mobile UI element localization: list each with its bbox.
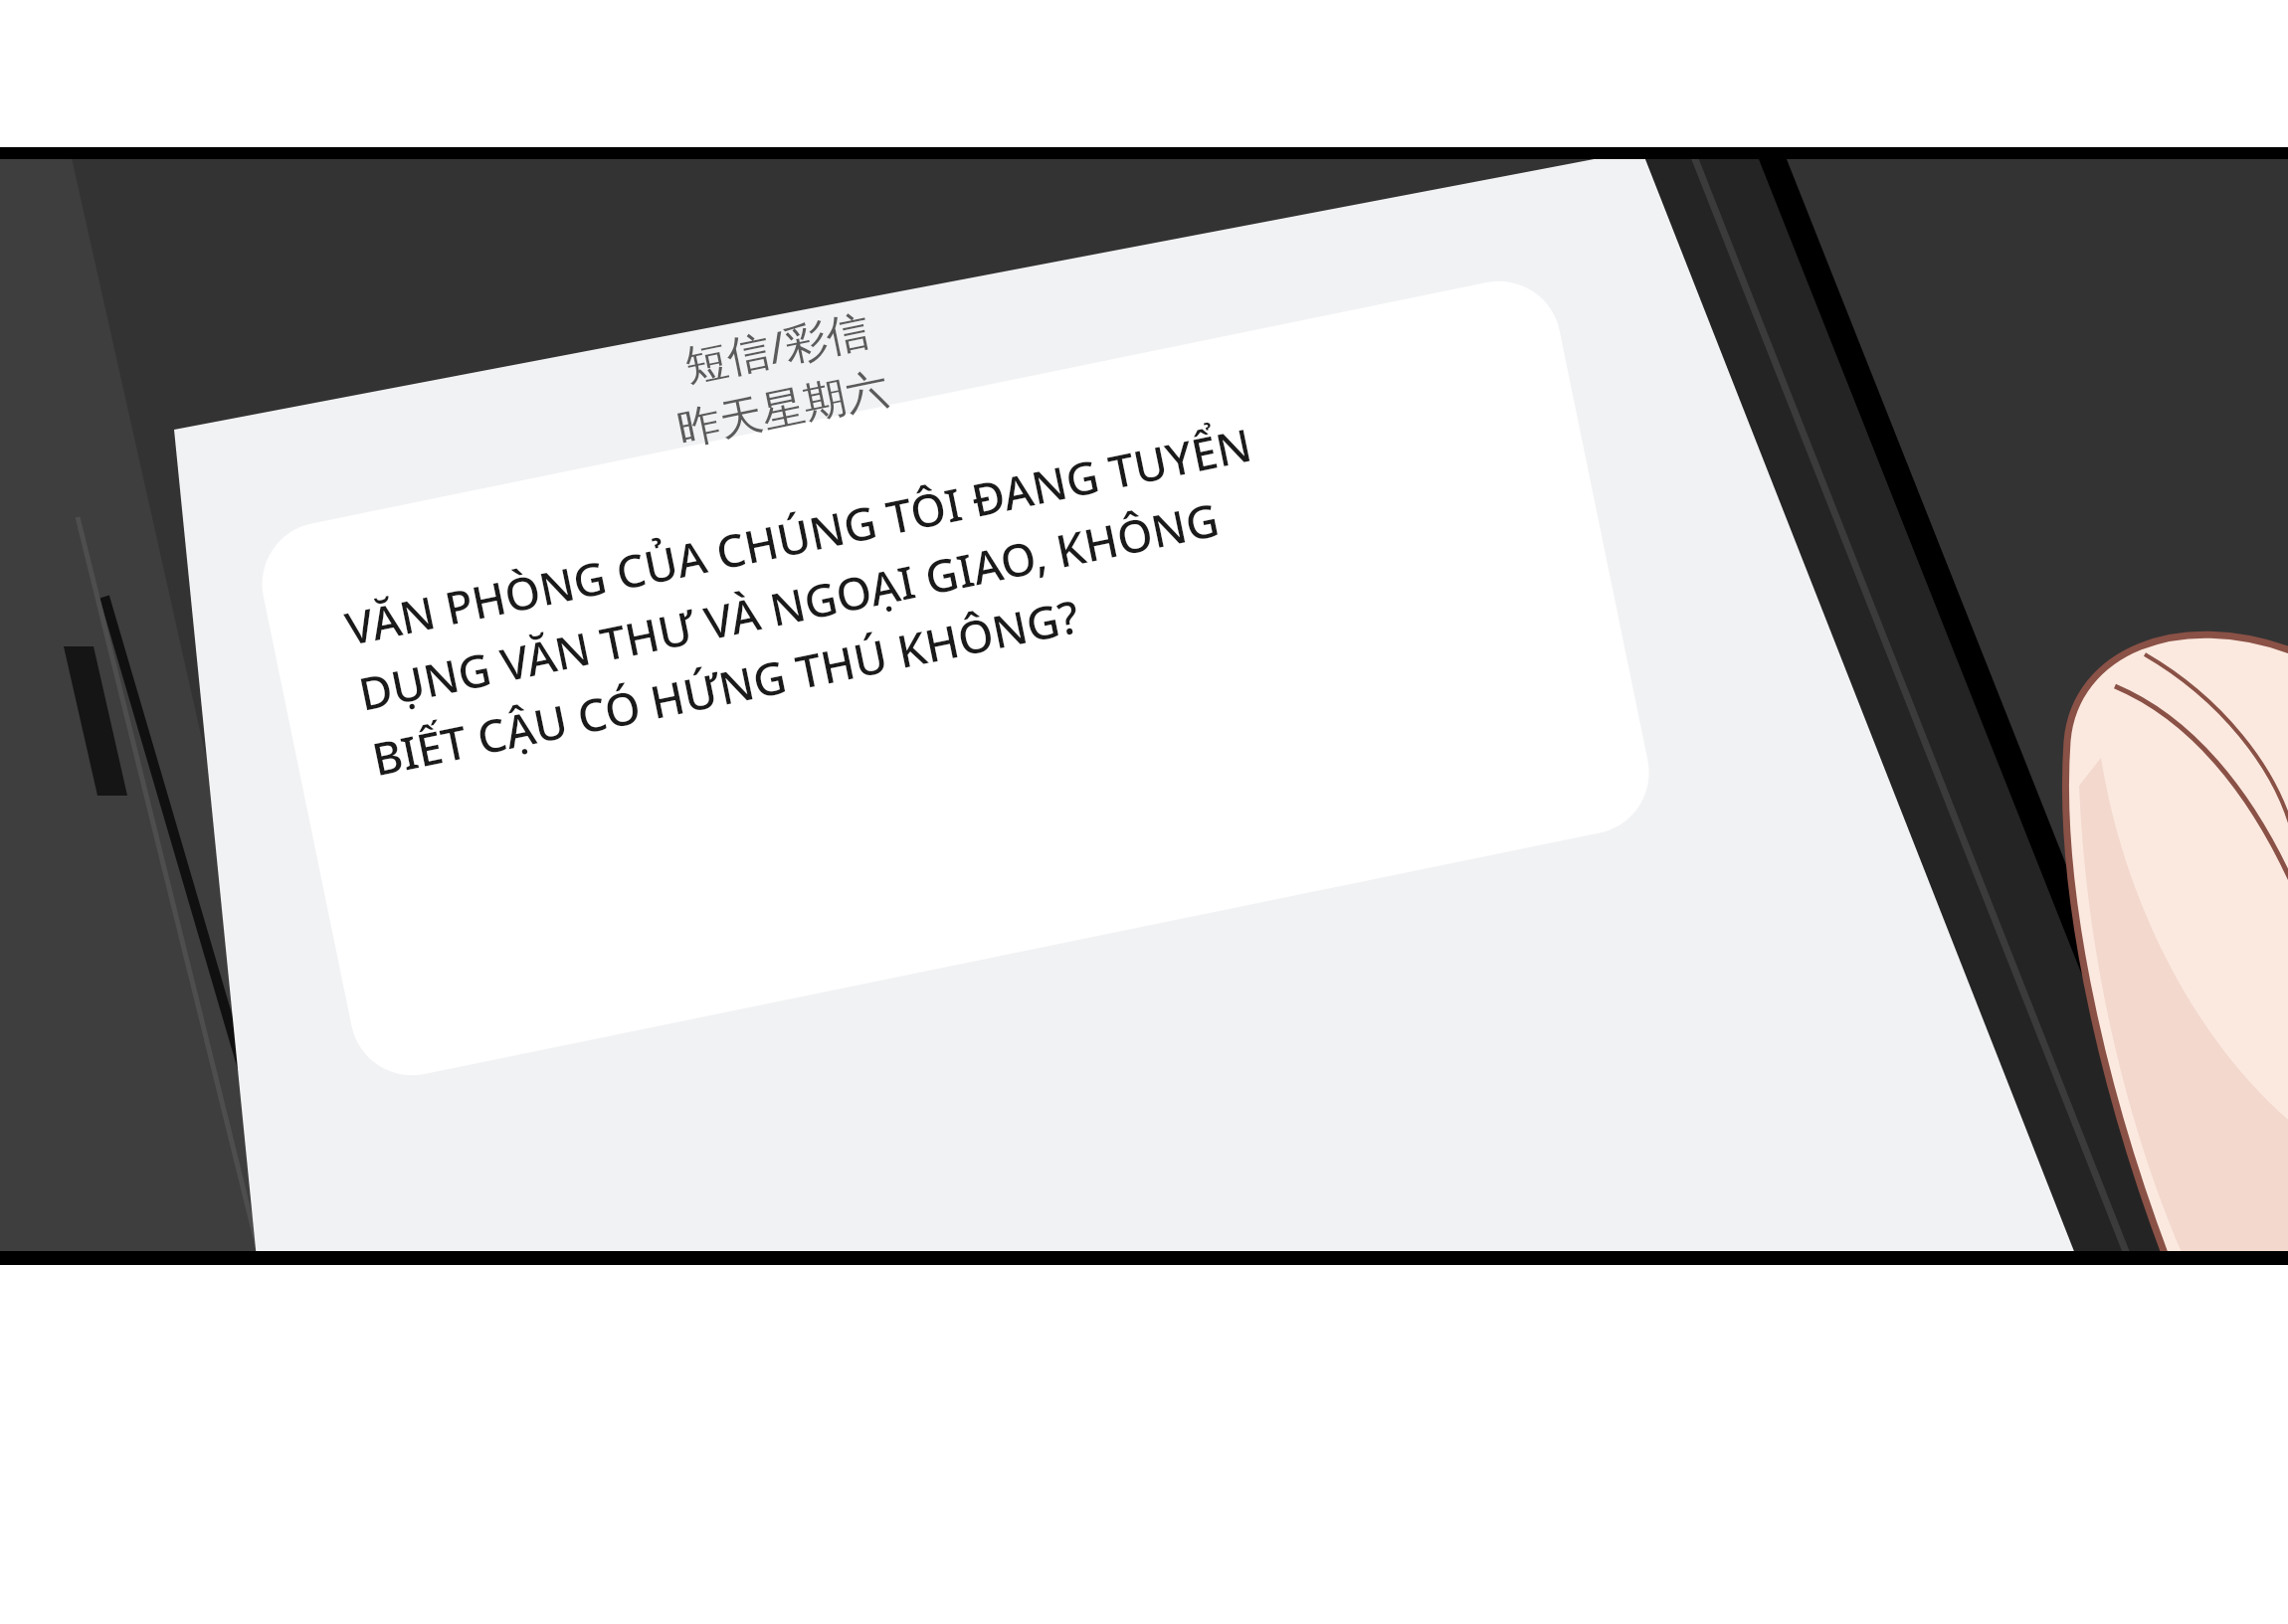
button[interactable]: SMS conversation comic panel (0, 0, 2288, 1624)
